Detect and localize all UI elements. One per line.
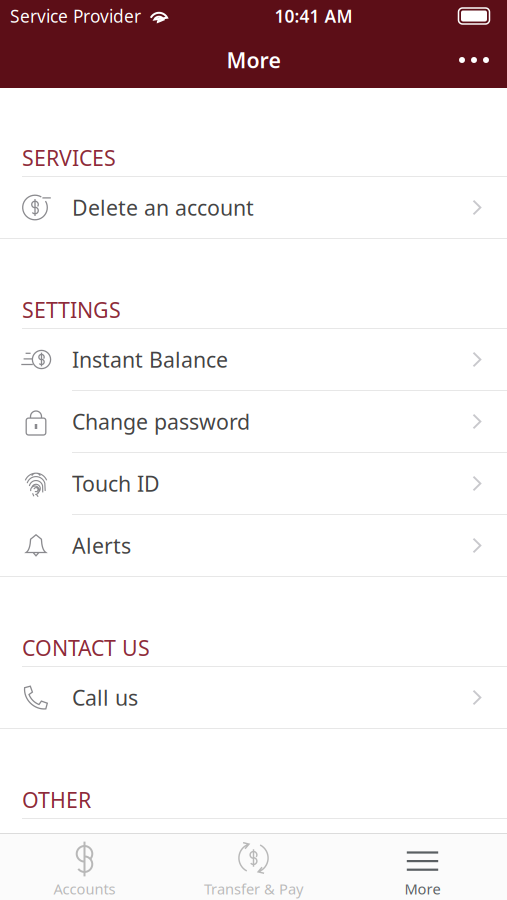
button[interactable]: Accounts	[0, 834, 169, 900]
button[interactable]: Call us	[0, 667, 507, 728]
staticText: CONTACT US	[22, 634, 150, 662]
staticText: SETTINGS	[22, 296, 121, 324]
button[interactable]: Alerts	[0, 515, 507, 576]
button[interactable]: Transfer & Pay	[169, 834, 338, 900]
staticText: Change password	[72, 407, 250, 436]
staticText: 10:41 AM	[274, 4, 352, 27]
staticText: OTHER	[22, 786, 91, 814]
staticText: More	[226, 46, 280, 74]
staticText: SERVICES	[22, 144, 116, 172]
staticText: Transfer & Pay	[204, 879, 303, 898]
staticText: Instant Balance	[72, 345, 228, 374]
staticText: Delete an account	[72, 193, 254, 222]
staticText: Accounts	[53, 879, 115, 898]
staticText: Touch ID	[72, 469, 160, 498]
button[interactable]: More	[338, 834, 507, 900]
staticText: Service Provider	[10, 4, 141, 27]
button[interactable]: Delete an account	[0, 177, 507, 238]
button[interactable]: Touch ID	[0, 453, 507, 514]
button[interactable]: Instant Balance	[0, 329, 507, 390]
staticText: Call us	[72, 683, 138, 712]
staticText: More	[404, 879, 440, 898]
button[interactable]: More options	[441, 32, 507, 88]
staticText: Alerts	[72, 531, 131, 560]
button[interactable]: Change password	[0, 391, 507, 452]
